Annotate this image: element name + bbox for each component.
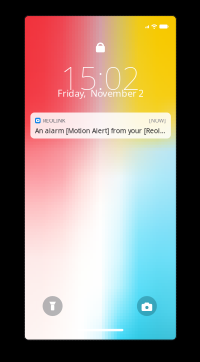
button[interactable]: REOLINK [30,112,171,138]
staticText: REOLINK [43,117,65,124]
button[interactable]: Camera [137,296,157,316]
staticText: [NOW] [149,117,166,124]
staticText: An alarm [Motion Alert] from your [Reoli… [35,126,166,135]
staticText: Friday, November 2 [57,87,143,99]
staticText: 15:02 [61,56,140,99]
button[interactable]: Flashlight [43,296,63,316]
